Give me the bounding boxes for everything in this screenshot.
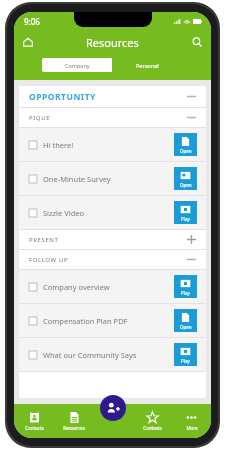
staticText: Play	[181, 216, 190, 222]
button[interactable]: Open	[174, 167, 197, 190]
staticText: Hi there!	[43, 140, 74, 150]
button[interactable]: What our Community Says	[19, 338, 206, 371]
button[interactable]: Hi there!	[19, 128, 206, 161]
staticText: FOLLOW UP	[29, 256, 69, 264]
button[interactable]: One-Minute Survey	[19, 162, 206, 195]
staticText: Resources	[86, 35, 139, 50]
staticText: PRESENT	[29, 236, 59, 244]
button[interactable]: Personal	[112, 58, 183, 72]
staticText: Resources	[63, 425, 85, 431]
staticText: Company	[65, 62, 90, 69]
staticText: Sizzle Video	[43, 208, 85, 218]
button[interactable]: Company overview	[19, 270, 206, 303]
button[interactable]: Contacts	[14, 404, 54, 438]
staticText: PIQUE	[29, 114, 51, 122]
button[interactable]: Sizzle Video	[19, 196, 206, 229]
button[interactable]: Add contact	[100, 395, 126, 421]
button[interactable]: Open	[174, 133, 197, 156]
staticText: Open	[180, 324, 192, 330]
staticText: What our Community Says	[43, 350, 137, 360]
staticText: More	[186, 425, 198, 431]
staticText: Open	[180, 182, 192, 188]
staticText: Compensation Plan PDF	[43, 316, 128, 326]
button[interactable]: Play	[174, 343, 197, 366]
button[interactable]: Home	[18, 32, 38, 52]
button[interactable]: More	[172, 404, 211, 438]
staticText: Contacts	[25, 425, 44, 431]
button[interactable]: Open	[174, 309, 197, 332]
button[interactable]: PIQUE	[19, 108, 206, 127]
staticText: Play	[181, 358, 190, 364]
staticText: Open	[180, 148, 192, 154]
staticText: Contests	[143, 425, 162, 431]
button[interactable]: OPPORTUNITY	[19, 86, 206, 107]
button[interactable]: Company	[42, 58, 112, 72]
button[interactable]: FOLLOW UP	[19, 250, 206, 269]
button[interactable]: Contests	[133, 404, 172, 438]
button[interactable]: Resources	[54, 404, 94, 438]
staticText: Personal	[136, 62, 159, 69]
button[interactable]: Compensation Plan PDF	[19, 304, 206, 337]
staticText: Play	[181, 290, 190, 296]
staticText: OPPORTUNITY	[29, 91, 96, 103]
button[interactable]: PRESENT	[19, 230, 206, 249]
button[interactable]: Play	[174, 201, 197, 224]
button[interactable]: Play	[174, 275, 197, 298]
staticText: Company overview	[43, 282, 110, 292]
staticText: One-Minute Survey	[43, 174, 111, 184]
staticText: 9:06	[24, 16, 40, 27]
button[interactable]: Search	[187, 32, 207, 52]
